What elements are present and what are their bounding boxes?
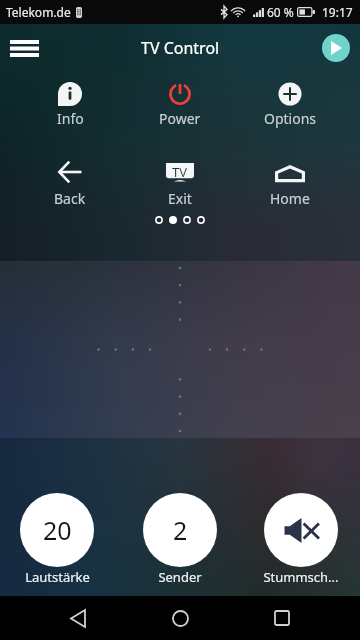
button[interactable]: Home bbox=[235, 160, 345, 208]
button[interactable]: Options bbox=[235, 82, 345, 128]
button[interactable]: Power bbox=[125, 82, 235, 128]
button[interactable]: Touchpad bbox=[0, 261, 360, 438]
button[interactable]: Back bbox=[54, 596, 102, 640]
button[interactable]: Home bbox=[156, 596, 204, 640]
staticText: Power bbox=[159, 109, 201, 128]
staticText: TV Control bbox=[141, 37, 220, 59]
staticText: Stummsch... bbox=[263, 568, 339, 586]
button[interactable]: 2 bbox=[120, 438, 240, 586]
staticText: Info bbox=[57, 109, 84, 128]
button[interactable]: Recents bbox=[258, 596, 306, 640]
staticText: 60 % bbox=[267, 4, 294, 20]
button[interactable]: Stummsch... bbox=[240, 438, 360, 586]
button[interactable]: Play bbox=[322, 34, 350, 62]
button[interactable]: TV bbox=[125, 160, 235, 208]
button[interactable]: Back bbox=[15, 160, 125, 208]
staticText: Telekom.de bbox=[6, 4, 71, 20]
button[interactable]: Menu bbox=[2, 26, 46, 70]
staticText: 2 bbox=[173, 513, 188, 547]
staticText: Home bbox=[270, 189, 310, 208]
staticText: Exit bbox=[168, 189, 192, 208]
staticText: Sender bbox=[158, 568, 202, 586]
button[interactable]: Info bbox=[15, 82, 125, 128]
staticText: 20 bbox=[43, 513, 72, 547]
staticText: 19:17 bbox=[322, 4, 353, 20]
button[interactable]: 20 bbox=[0, 438, 120, 586]
staticText: TV bbox=[172, 163, 188, 181]
staticText: Options bbox=[264, 109, 317, 128]
staticText: Lautstärke bbox=[25, 568, 90, 586]
staticText: Back bbox=[54, 189, 86, 208]
